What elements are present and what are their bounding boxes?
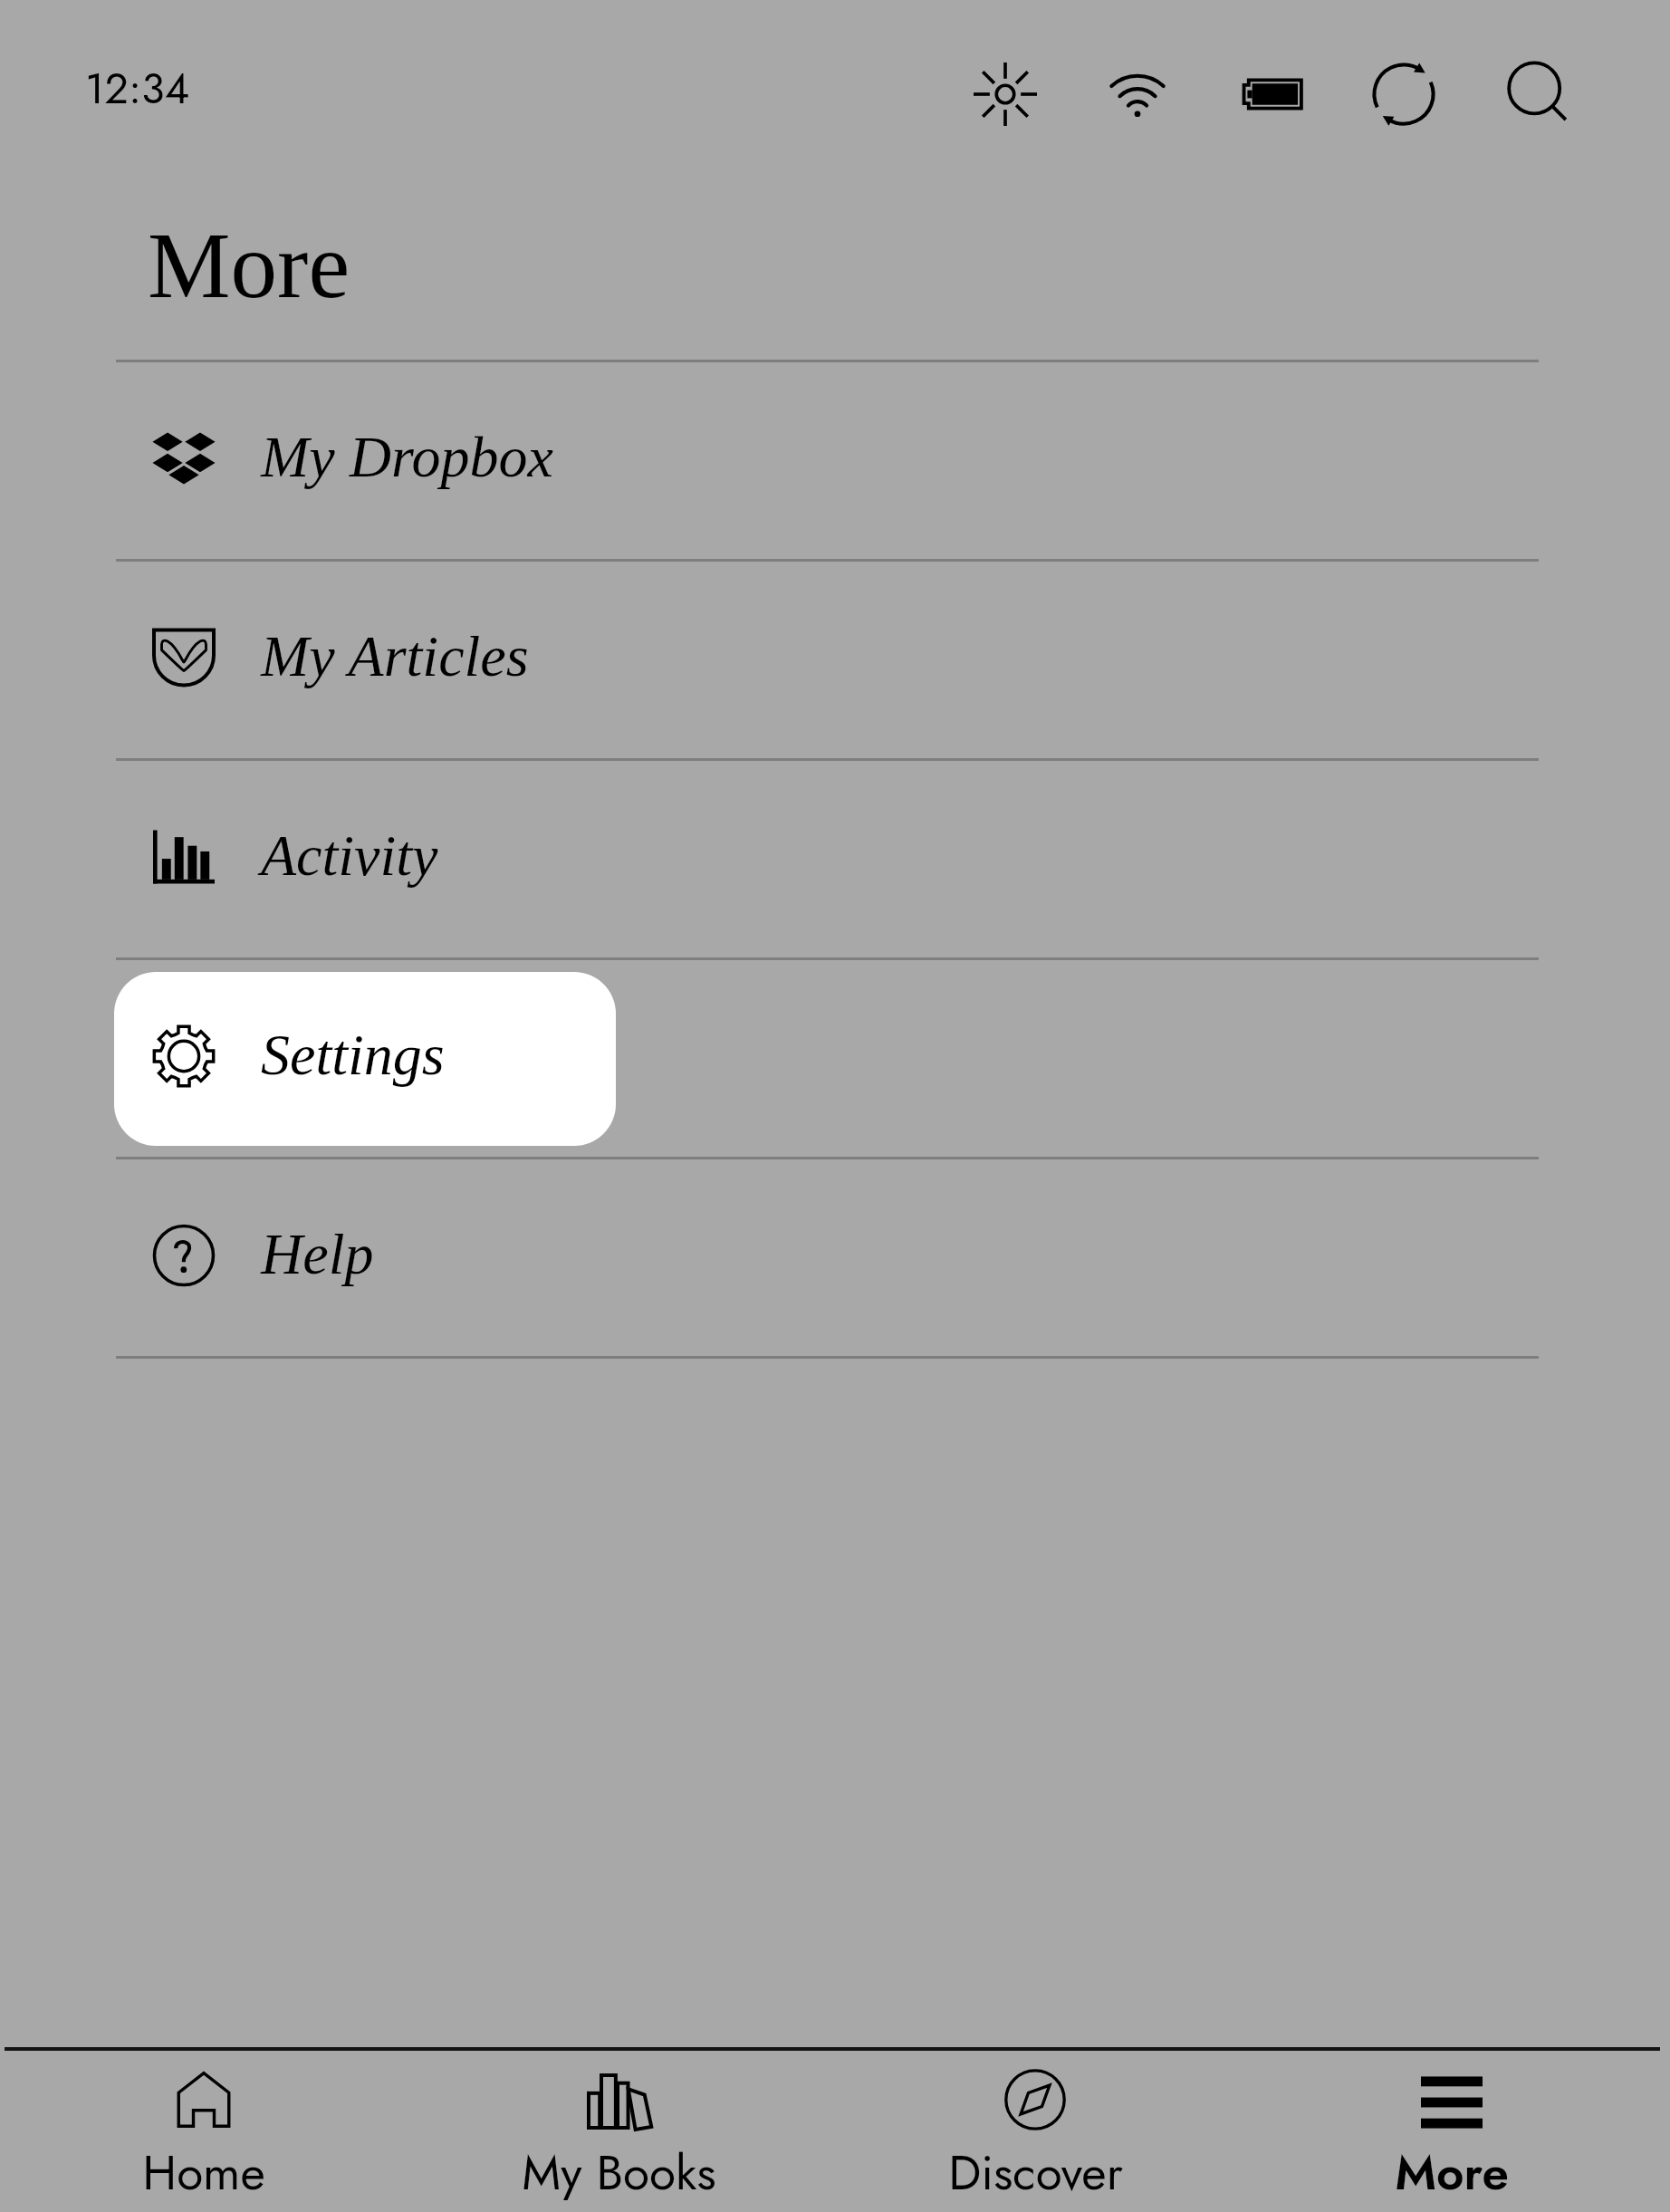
- staticText: My Articles: [261, 624, 529, 688]
- staticText: Home: [142, 2138, 265, 2207]
- staticText: Help: [261, 1222, 374, 1286]
- button[interactable]: My Books: [411, 2051, 827, 2212]
- button[interactable]: Brightness: [962, 51, 1049, 138]
- button[interactable]: Settings: [0, 960, 1670, 1157]
- button[interactable]: Sync: [1360, 51, 1447, 138]
- staticText: Settings: [261, 1023, 445, 1087]
- staticText: My Books: [522, 2138, 716, 2207]
- staticText: More: [1395, 2138, 1509, 2207]
- button[interactable]: Home: [0, 2051, 411, 2212]
- button[interactable]: Search: [1493, 50, 1580, 137]
- staticText: Activity: [261, 823, 438, 888]
- button[interactable]: My Articles: [0, 562, 1670, 758]
- button[interactable]: Discover: [827, 2051, 1243, 2212]
- staticText: My Dropbox: [261, 425, 553, 489]
- button[interactable]: My Dropbox: [0, 362, 1670, 559]
- staticText: More: [148, 214, 350, 317]
- staticText: Discover: [948, 2138, 1123, 2207]
- button[interactable]: Help: [0, 1159, 1670, 1356]
- button[interactable]: Wi-Fi: [1094, 50, 1181, 137]
- button[interactable]: More: [1243, 2051, 1660, 2212]
- button[interactable]: Activity: [0, 761, 1670, 957]
- button[interactable]: Battery: [1228, 51, 1315, 138]
- staticText: 12:34: [85, 58, 190, 120]
